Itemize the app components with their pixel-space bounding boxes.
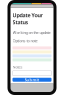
button[interactable]: Submit — [12, 78, 51, 82]
staticText: Working on the update — [12, 30, 50, 35]
staticText: Update Your Status — [12, 12, 42, 26]
staticText: Notes — [12, 64, 22, 70]
staticText: Options to note — [12, 38, 37, 43]
staticText: Submit — [24, 77, 39, 82]
